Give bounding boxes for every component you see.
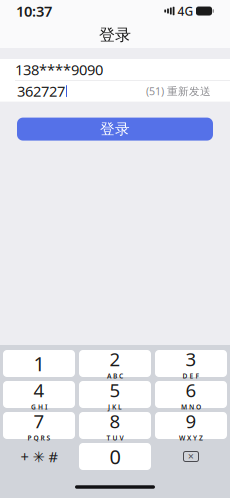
button[interactable]: 4 [3, 381, 75, 408]
staticText: 138****9090 [15, 60, 103, 79]
button[interactable]: 8 [79, 412, 151, 439]
staticText: D E F [182, 371, 199, 380]
staticText: 1 [33, 350, 44, 377]
button[interactable]: 6 [155, 381, 227, 408]
staticText: 5 [109, 378, 120, 402]
staticText: 4 [33, 378, 44, 402]
staticText: 6 [185, 378, 196, 402]
staticText: 9 [185, 409, 196, 433]
staticText: 登录 [99, 25, 131, 45]
staticText: P Q R S [27, 433, 50, 442]
staticText: 登录 [100, 120, 130, 138]
staticText: 10:37 [16, 1, 52, 21]
staticText: 2 [109, 347, 120, 371]
button[interactable]: 2 [79, 350, 151, 377]
staticText: 3 [185, 347, 196, 371]
staticText: + ✳ # [20, 447, 57, 466]
button[interactable]: 1 [3, 350, 75, 377]
staticText: 4G [177, 3, 193, 19]
button[interactable]: 7 [3, 412, 75, 439]
button[interactable]: + ✳ # [3, 443, 75, 470]
staticText: G H I [31, 402, 47, 411]
button[interactable]: 9 [155, 412, 227, 439]
staticText: (51) 重新发送 [146, 84, 211, 98]
button[interactable]: 0 [79, 443, 151, 470]
button[interactable]: 登录 [17, 118, 213, 141]
staticText: 7 [33, 409, 44, 433]
button[interactable]: 3 [155, 350, 227, 377]
staticText: 0 [109, 443, 120, 470]
staticText: W X Y Z [179, 433, 203, 442]
staticText: T U V [106, 433, 123, 442]
staticText: J K L [108, 402, 122, 411]
staticText: 362727 [17, 81, 65, 101]
staticText: 8 [109, 409, 120, 433]
staticText: A B C [107, 371, 123, 380]
button[interactable]: (51) 重新发送 [144, 80, 213, 102]
button[interactable]: 5 [79, 381, 151, 408]
button[interactable]: Delete [155, 443, 227, 470]
staticText: M N O [181, 402, 201, 411]
staticText: ✕ [187, 452, 194, 461]
